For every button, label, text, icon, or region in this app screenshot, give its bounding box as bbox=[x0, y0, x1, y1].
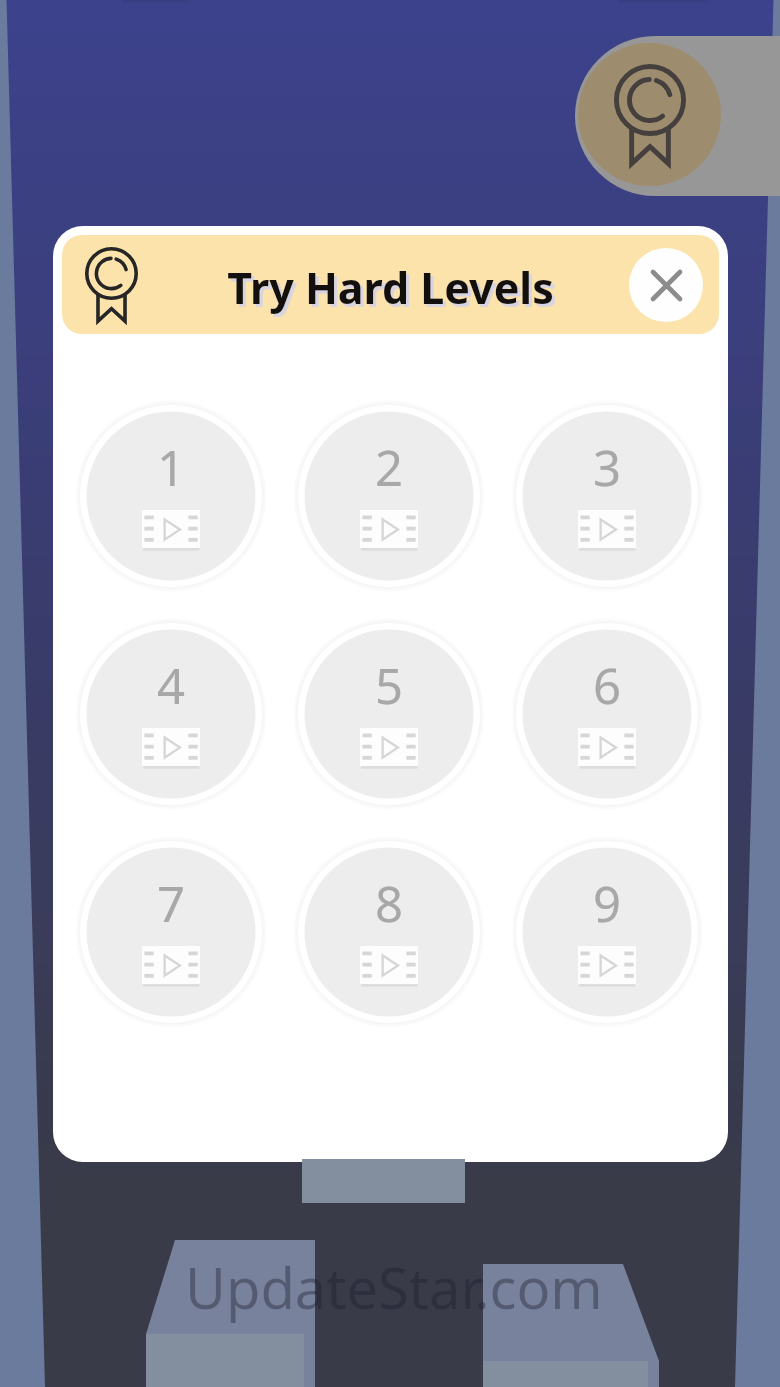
staticText: UpdateStar.com bbox=[185, 1249, 603, 1325]
staticText: 9 bbox=[593, 870, 622, 937]
button[interactable]: 2 bbox=[293, 400, 485, 592]
button[interactable]: 8 bbox=[293, 836, 485, 1028]
staticText: 8 bbox=[375, 870, 404, 937]
button[interactable]: 6 bbox=[511, 618, 703, 810]
staticText: 4 bbox=[157, 652, 186, 719]
staticText: 1 bbox=[157, 434, 186, 501]
button[interactable]: Achievements bbox=[575, 36, 780, 196]
button[interactable]: 7 bbox=[75, 836, 267, 1028]
staticText: 3 bbox=[593, 434, 622, 501]
button[interactable]: 1 bbox=[75, 400, 267, 592]
button[interactable]: 9 bbox=[511, 836, 703, 1028]
button[interactable]: 4 bbox=[75, 618, 267, 810]
button[interactable]: Close bbox=[629, 248, 703, 322]
staticText: 2 bbox=[375, 434, 404, 501]
staticText: Try Hard Levels bbox=[227, 258, 554, 317]
staticText: Try Hard Levels bbox=[230, 261, 557, 320]
staticText: 6 bbox=[593, 652, 622, 719]
button[interactable]: 3 bbox=[511, 400, 703, 592]
button[interactable]: 5 bbox=[293, 618, 485, 810]
staticText: 5 bbox=[375, 652, 404, 719]
staticText: 7 bbox=[157, 870, 186, 937]
